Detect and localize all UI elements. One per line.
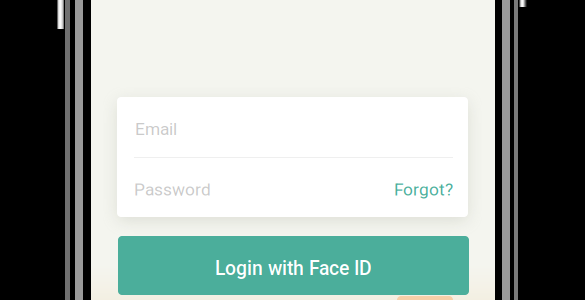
staticText: Login with Face ID	[215, 257, 372, 280]
button[interactable]: Login with Face ID	[118, 236, 469, 295]
button[interactable]: Forgot?	[394, 177, 453, 198]
staticText: Password	[134, 179, 211, 200]
staticText: Email	[135, 119, 177, 139]
staticText: Forgot?	[394, 179, 453, 200]
